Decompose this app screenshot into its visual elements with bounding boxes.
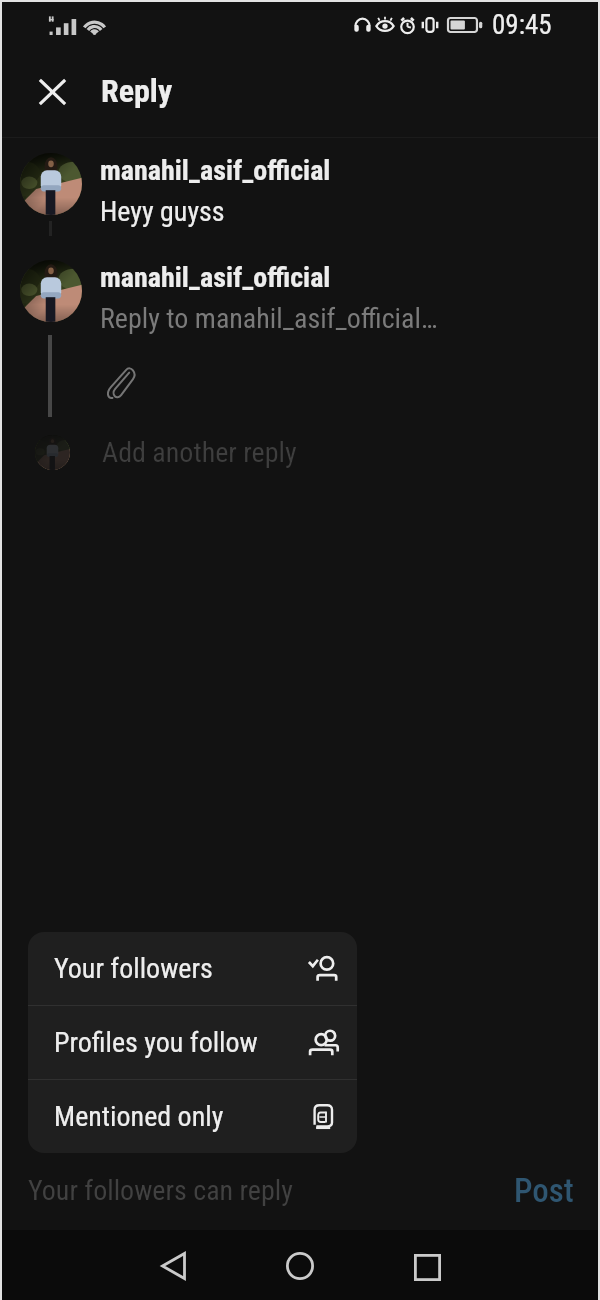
button[interactable]: Your followers can reply [28, 1174, 293, 1207]
button[interactable]: Profiles you follow [28, 1006, 357, 1079]
button[interactable]: Post [514, 1171, 574, 1210]
staticText: Add another reply [102, 436, 297, 469]
button[interactable]: Home [269, 1238, 331, 1294]
staticText: Reply to manahil_asif_official… [100, 302, 438, 335]
staticText: Mentioned only [54, 1100, 224, 1133]
button[interactable]: Add another reply [2, 426, 598, 478]
staticText: Profiles you follow [54, 1026, 258, 1059]
button[interactable]: Attach media [98, 359, 140, 401]
staticText: Post [514, 1171, 574, 1210]
staticText: manahil_asif_official [100, 261, 331, 294]
staticText: Heyy guyss [100, 195, 225, 228]
button[interactable]: Mentioned only [28, 1080, 357, 1153]
staticText: 09:45 [492, 9, 552, 41]
button[interactable]: Recents [396, 1239, 458, 1295]
staticText: Reply [101, 72, 173, 110]
staticText: Your followers can reply [28, 1174, 293, 1207]
staticText: manahil_asif_official [100, 154, 331, 187]
button[interactable]: Close [29, 69, 75, 115]
staticText: Your followers [54, 952, 213, 985]
button[interactable]: Your followers [28, 932, 357, 1005]
button[interactable]: Back [142, 1238, 204, 1294]
